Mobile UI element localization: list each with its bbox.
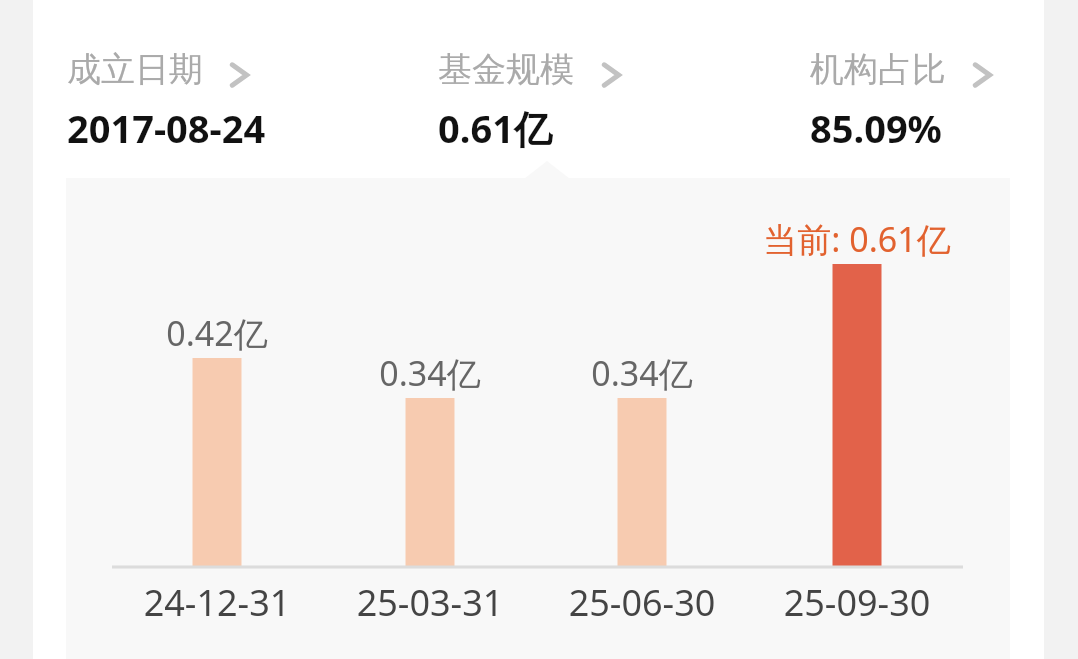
- staticText: 2017-08-24: [67, 102, 266, 154]
- staticText: 0.42亿: [107, 310, 327, 356]
- button[interactable]: 基金规模: [438, 34, 738, 154]
- other: 成立日期: [229, 60, 251, 90]
- staticText: 0.34亿: [532, 350, 752, 396]
- staticText: 25-09-30: [727, 578, 987, 627]
- staticText: 0.61亿: [438, 102, 552, 154]
- button[interactable]: 成立日期: [67, 34, 367, 154]
- staticText: 24-12-31: [87, 578, 347, 627]
- staticText: 成立日期: [67, 48, 203, 91]
- staticText: 0.34亿: [320, 350, 540, 396]
- button[interactable]: 机构占比: [810, 34, 1078, 154]
- staticText: 25-03-31: [300, 578, 560, 627]
- staticText: 机构占比: [810, 48, 946, 91]
- staticText: 85.09%: [810, 102, 942, 154]
- staticText: 基金规模: [438, 48, 574, 91]
- staticText: 当前: 0.61亿: [697, 216, 1017, 262]
- staticText: 25-06-30: [512, 578, 772, 627]
- other: 基金规模: [601, 60, 623, 90]
- other: 机构占比: [972, 60, 994, 90]
